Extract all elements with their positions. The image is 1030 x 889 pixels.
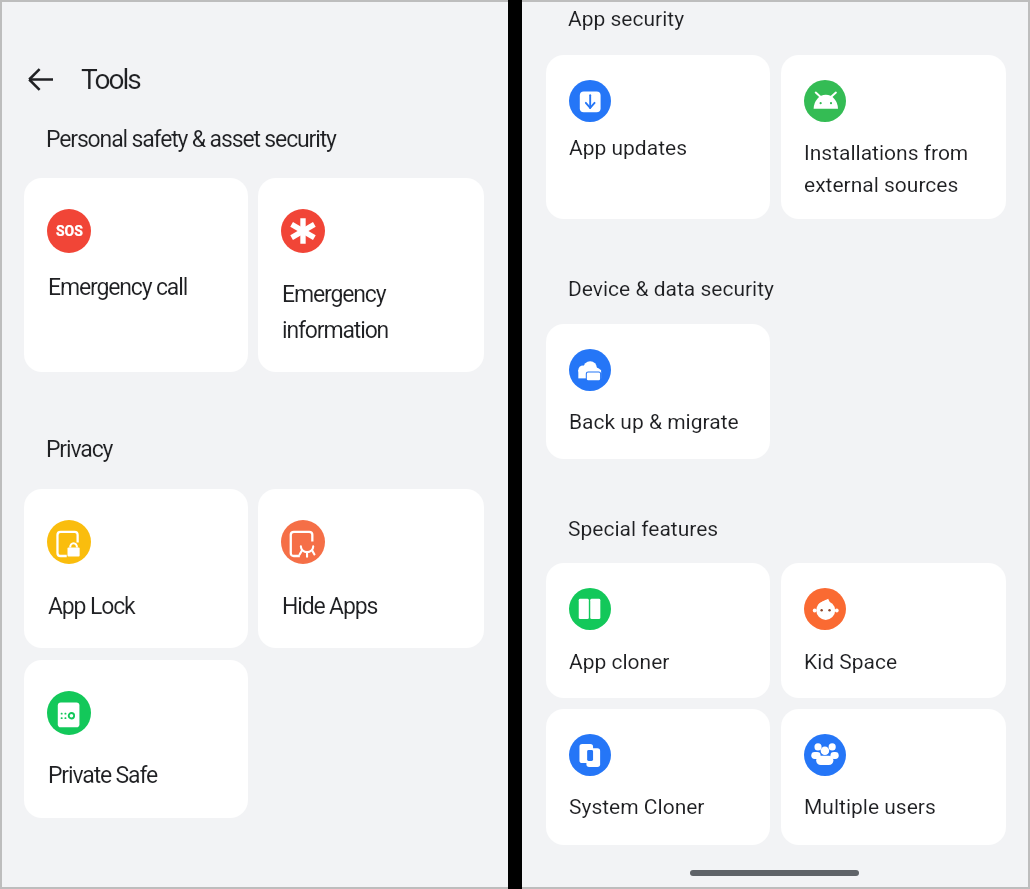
staticText: Device & data security	[568, 277, 775, 302]
staticText: Personal safety & asset security	[46, 126, 336, 153]
button[interactable]: System Cloner	[546, 709, 770, 845]
button[interactable]: App updates	[546, 55, 770, 219]
staticText: Back up & migrate	[569, 410, 739, 435]
button[interactable]: Installations from external sources	[781, 55, 1006, 219]
staticText: App cloner	[569, 650, 670, 675]
button[interactable]: Back	[17, 56, 63, 102]
staticText: Special features	[568, 517, 719, 542]
staticText: Emergency call	[48, 274, 188, 301]
staticText: Privacy	[46, 436, 113, 463]
staticText: Installations from external sources	[804, 141, 969, 197]
staticText: Private Safe	[48, 762, 158, 789]
staticText: App updates	[569, 136, 687, 161]
staticText: App security	[568, 7, 685, 32]
staticText: SOS	[56, 223, 83, 239]
staticText: Multiple users	[804, 795, 936, 820]
button[interactable]: Back up & migrate	[546, 324, 770, 459]
staticText: App Lock	[48, 593, 135, 620]
staticText: Kid Space	[804, 650, 898, 675]
staticText: System Cloner	[569, 795, 705, 820]
button[interactable]: Multiple users	[781, 709, 1006, 845]
staticText: Emergency information	[282, 281, 389, 343]
staticText: Tools	[81, 63, 140, 96]
staticText: Hide Apps	[282, 593, 378, 620]
button[interactable]: Kid Space	[781, 563, 1006, 698]
button[interactable]: App cloner	[546, 563, 770, 698]
button[interactable]: App Lock	[24, 489, 248, 648]
button[interactable]: Private Safe	[24, 660, 248, 818]
button[interactable]: Emergency information	[258, 178, 484, 372]
button[interactable]: Hide Apps	[258, 489, 484, 648]
button[interactable]: SOS	[24, 178, 248, 372]
